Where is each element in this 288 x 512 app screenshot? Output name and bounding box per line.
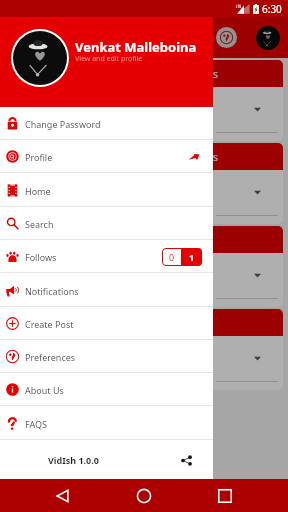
button[interactable]: Change Password xyxy=(0,107,213,140)
button[interactable]: Preferences xyxy=(0,340,213,373)
button[interactable]: Recents xyxy=(203,479,247,512)
staticText: Follows xyxy=(25,251,57,263)
staticText: 0 xyxy=(169,251,175,263)
button[interactable]: Language xyxy=(216,27,237,48)
staticText: Search xyxy=(25,218,54,230)
staticText: 1 xyxy=(189,251,195,263)
staticText: FAQS xyxy=(25,418,48,430)
button[interactable]: Share xyxy=(175,449,197,471)
button[interactable] xyxy=(5,309,283,390)
button[interactable]: Account xyxy=(256,26,280,50)
button[interactable]: Home xyxy=(0,174,213,207)
button[interactable]: Search xyxy=(0,207,213,240)
staticText: About Us xyxy=(25,384,64,396)
button[interactable]: 0 xyxy=(162,248,202,266)
staticText: Preferences xyxy=(25,351,76,363)
button[interactable]: VidIsh 1.0.0 xyxy=(0,440,213,479)
button[interactable]: Follows xyxy=(0,240,213,273)
staticText: Tournaments xyxy=(52,29,134,47)
staticText: Upcoming Tennis Tournaments xyxy=(5,66,218,81)
staticText: Home xyxy=(25,185,51,197)
staticText: View and edit profile xyxy=(75,54,143,64)
button[interactable]: Venkat Malleboina xyxy=(0,0,213,107)
button[interactable] xyxy=(5,226,283,307)
button[interactable]: About Us xyxy=(0,373,213,406)
staticText: Change Password xyxy=(25,118,101,130)
button[interactable]: Upcoming Tennis Tournaments xyxy=(5,60,283,141)
staticText: Profile xyxy=(25,151,53,163)
button[interactable]: Create Post xyxy=(0,307,213,340)
button[interactable]: Back xyxy=(41,479,85,512)
staticText: VidIsh 1.0.0 xyxy=(48,454,99,466)
button[interactable]: Notifications xyxy=(0,274,213,307)
staticText: Create Post xyxy=(25,318,74,330)
button[interactable]: FAQS xyxy=(0,407,213,440)
staticText: Upcoming Tennis Tournaments xyxy=(5,149,218,164)
staticText: 6:30 xyxy=(262,2,282,16)
button[interactable]: Upcoming Tennis Tournaments xyxy=(5,143,283,224)
staticText: Venkat Malleboina xyxy=(75,38,197,56)
staticText: Notifications xyxy=(25,285,79,297)
button[interactable]: Home xyxy=(122,479,166,512)
button[interactable]: Profile xyxy=(0,140,213,173)
button[interactable]: Share profile xyxy=(186,149,202,165)
